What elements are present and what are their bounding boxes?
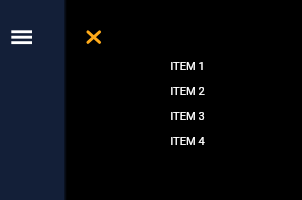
button[interactable]: ITEM 1 [150,60,224,85]
button[interactable]: ITEM 4 [150,135,224,160]
staticText: ITEM 3 [170,110,205,123]
button[interactable]: Open navigation menu [9,22,34,48]
staticText: ITEM 2 [170,85,205,98]
button[interactable]: ITEM 2 [150,85,224,110]
staticText: ITEM 1 [170,60,205,73]
staticText: ITEM 4 [170,135,205,148]
button[interactable]: ITEM 3 [150,110,224,135]
button[interactable]: Close [82,26,105,49]
